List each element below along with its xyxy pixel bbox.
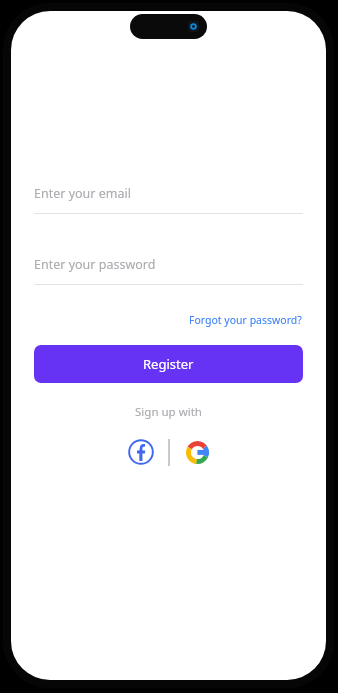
button[interactable]: Sign up with Google	[181, 436, 213, 468]
staticText: Forgot your password?	[189, 313, 302, 327]
button[interactable]: Register	[34, 345, 303, 383]
button[interactable]: Sign up with Facebook	[125, 436, 157, 468]
staticText: Enter your email	[34, 185, 131, 202]
button[interactable]: Forgot your password?	[188, 311, 303, 329]
staticText: Register	[143, 355, 194, 373]
staticText: Sign up with	[135, 404, 202, 420]
button[interactable]: Enter your password	[34, 254, 303, 285]
button[interactable]: Enter your email	[34, 183, 303, 214]
staticText: Enter your password	[34, 256, 156, 273]
